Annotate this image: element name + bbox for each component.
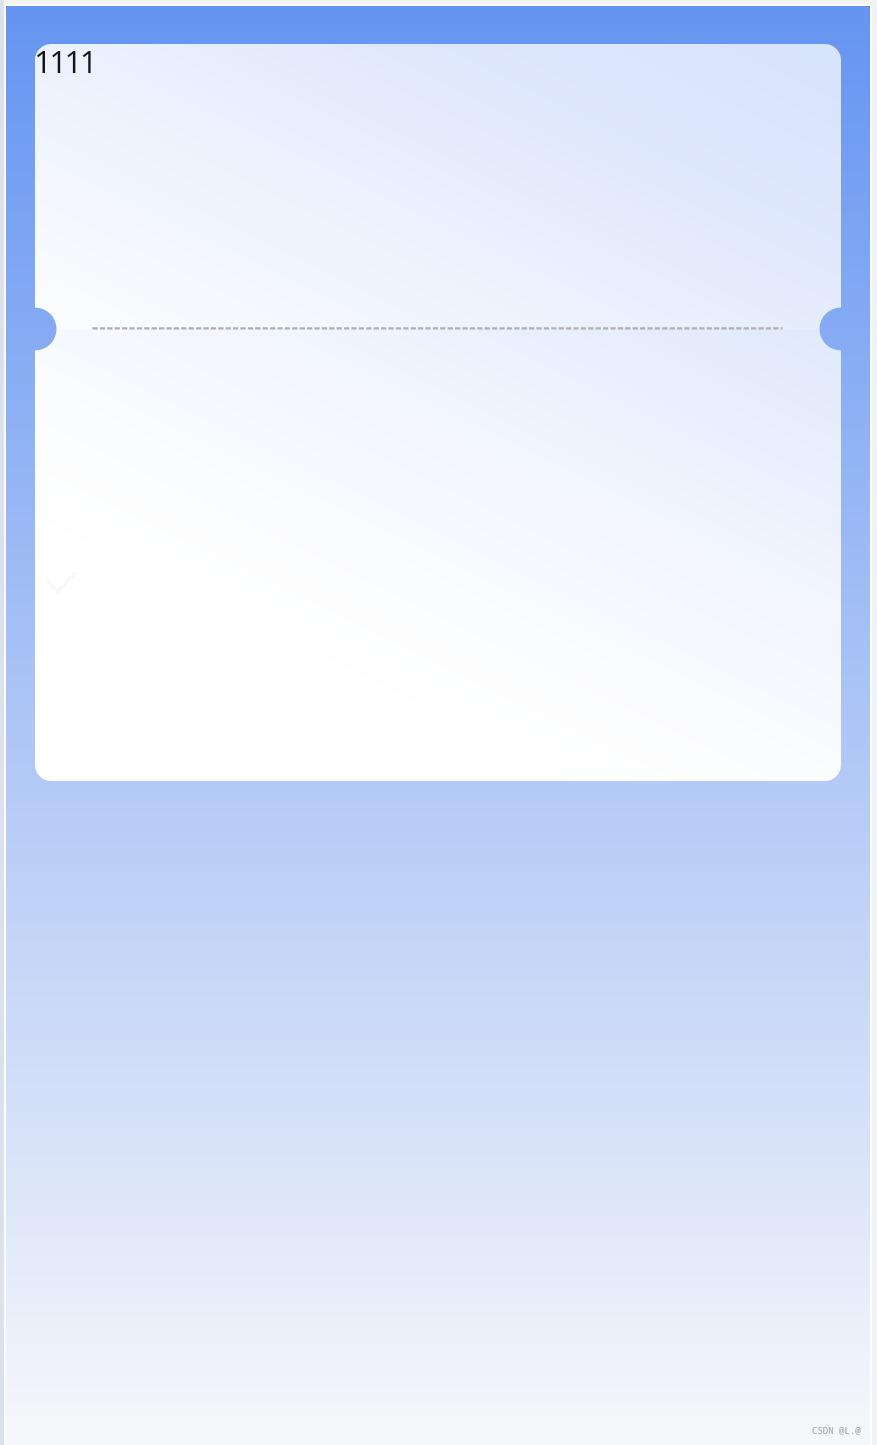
staticText: CSDN @L.@ — [812, 1424, 861, 1436]
button[interactable] — [35, 329, 841, 781]
staticText: 1111 — [34, 40, 95, 82]
button[interactable]: 1111 — [35, 44, 841, 329]
